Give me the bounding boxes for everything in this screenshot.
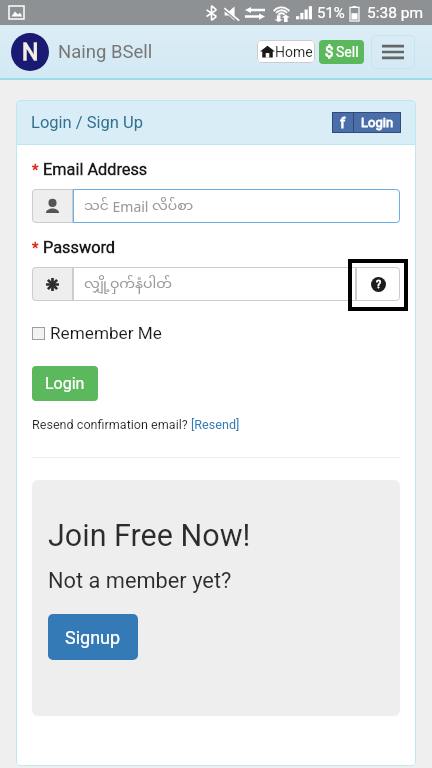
button[interactable]: သင် Email လိပ်စာ [73, 189, 400, 223]
staticText: Sell [336, 44, 359, 60]
staticText: Signup [65, 627, 121, 648]
button[interactable]: Remember Me [32, 323, 162, 343]
button[interactable]: Password help [356, 267, 400, 301]
staticText: Resend confirmation email? [32, 417, 191, 432]
button[interactable]: Home [257, 40, 315, 63]
staticText: Naing BSell [58, 41, 153, 63]
staticText: 5:38 pm [367, 4, 424, 22]
button[interactable]: Signup [48, 614, 138, 660]
staticText: Login [45, 374, 85, 393]
button[interactable]: N [11, 33, 153, 71]
staticText: Home [275, 44, 313, 60]
staticText: 51% [317, 4, 345, 22]
staticText: f [340, 114, 346, 132]
staticText: Login / Sign Up [31, 113, 143, 132]
staticText: * [32, 161, 39, 179]
button[interactable]: လျှို့ဝှက်နံပါတ် [73, 267, 356, 301]
staticText: သင် Email လိပ်စာ [84, 197, 194, 216]
staticText: Password [43, 238, 115, 257]
button[interactable]: Login [32, 366, 98, 401]
staticText: Remember Me [50, 323, 162, 343]
staticText: Join Free Now! [48, 518, 251, 554]
button[interactable]: [Resend] [191, 417, 240, 432]
staticText: Email Address [43, 160, 148, 179]
staticText: * [32, 239, 39, 257]
button[interactable]: Menu [371, 35, 415, 69]
staticText: $ [325, 43, 334, 61]
staticText: Not a member yet? [48, 568, 232, 594]
staticText: N [22, 39, 39, 66]
staticText: ? [376, 278, 382, 291]
staticText: Login [361, 115, 394, 130]
staticText: လျှို့ဝှက်နံပါတ် [84, 275, 173, 294]
button[interactable]: f [332, 112, 401, 133]
button[interactable]: $ [319, 40, 364, 64]
